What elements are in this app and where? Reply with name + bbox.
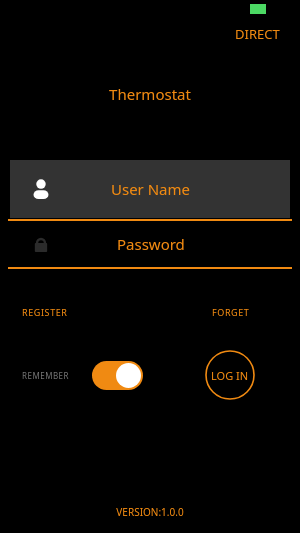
staticText: LOG IN xyxy=(211,368,249,383)
staticText: DIRECT xyxy=(235,25,280,43)
button[interactable]: User Name xyxy=(10,160,290,218)
staticText: Password xyxy=(117,234,185,254)
staticText: REGISTER xyxy=(22,306,68,318)
staticText: REMEMBER xyxy=(22,370,70,381)
staticText: Thermostat xyxy=(109,84,191,104)
staticText: VERSION:1.0.0 xyxy=(116,505,184,519)
button[interactable]: FORGET xyxy=(206,302,256,322)
button[interactable]: Remember me toggle xyxy=(92,361,143,390)
button[interactable]: REGISTER xyxy=(16,302,74,322)
staticText: FORGET xyxy=(212,306,250,318)
staticText: User Name xyxy=(111,179,191,199)
button[interactable]: LOG IN xyxy=(204,350,256,400)
button[interactable]: Password xyxy=(10,221,290,266)
